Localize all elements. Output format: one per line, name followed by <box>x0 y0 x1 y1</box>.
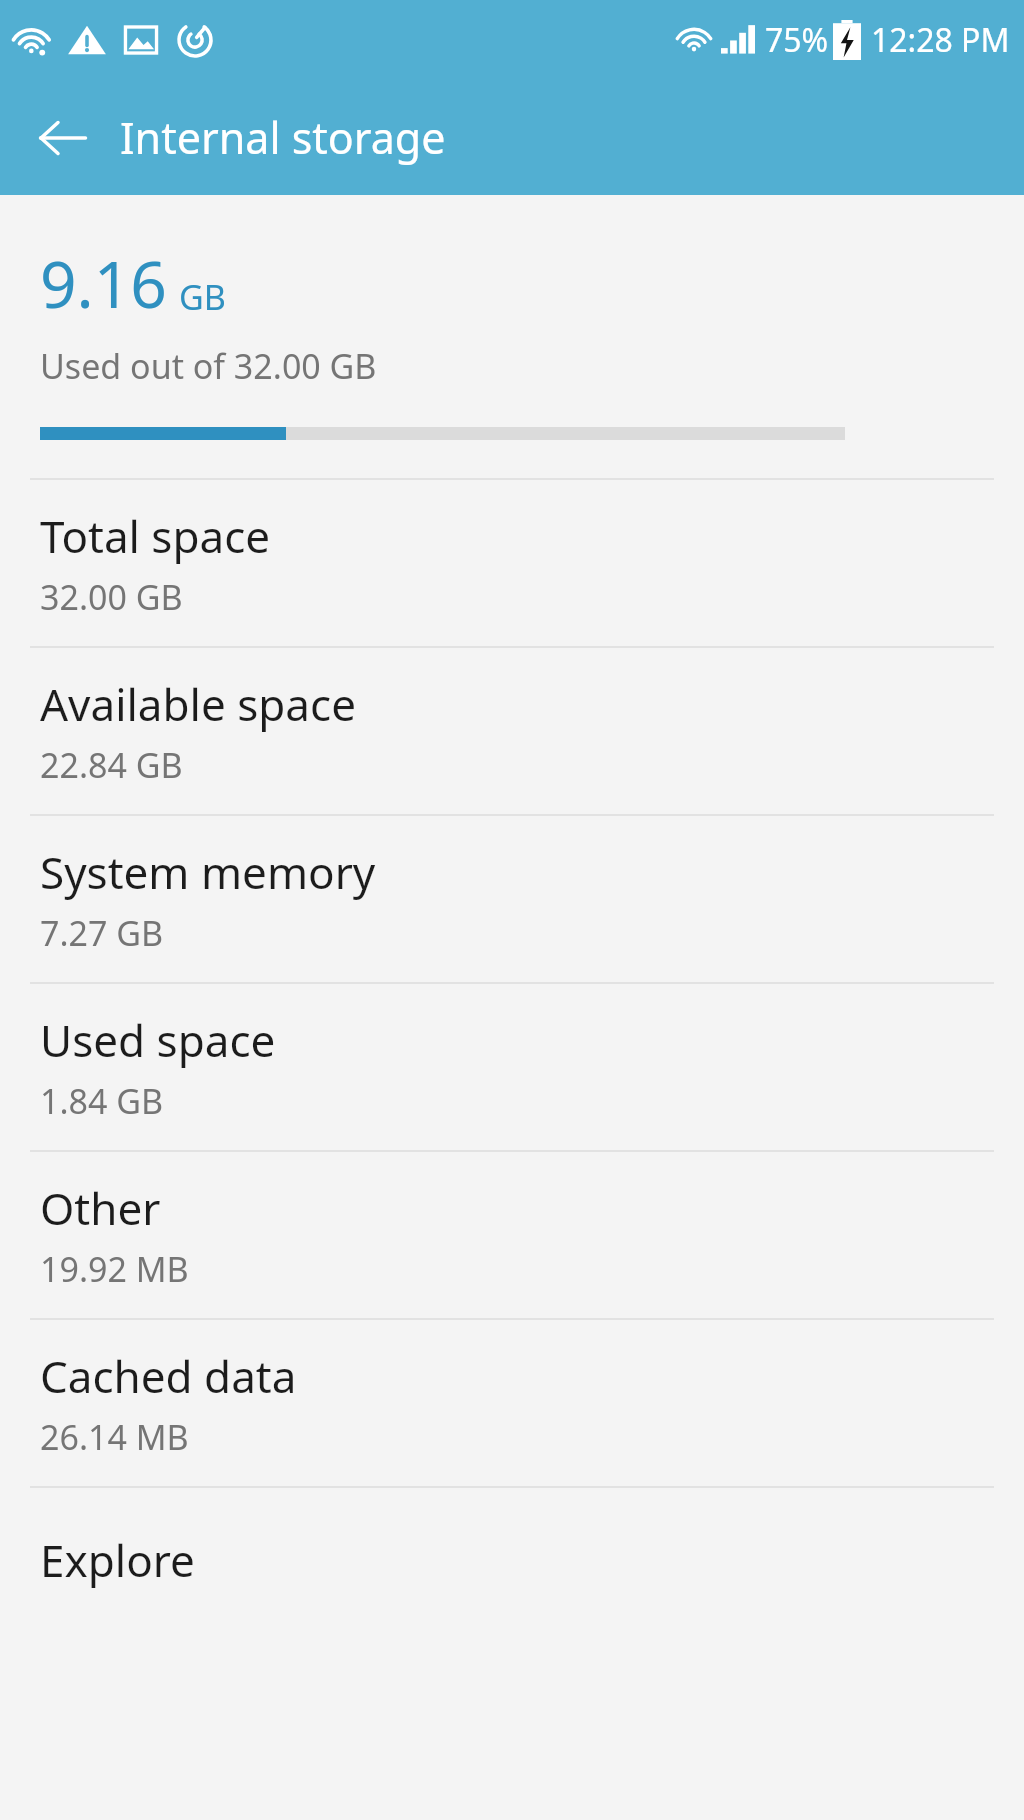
staticText: 9.16 <box>40 240 167 327</box>
staticText: Internal storage <box>120 108 446 167</box>
button[interactable]: System memory <box>0 816 1024 982</box>
button[interactable]: Total space <box>0 480 1024 646</box>
staticText: 1.84 GB <box>40 1078 164 1124</box>
staticText: Used out of 32.00 GB <box>40 343 377 389</box>
staticText: Used space <box>40 1010 276 1070</box>
staticText: 12:28 PM <box>871 18 1010 62</box>
staticText: 19.92 MB <box>40 1246 189 1292</box>
staticText: Available space <box>40 674 356 734</box>
staticText: 32.00 GB <box>40 574 183 620</box>
staticText: Total space <box>40 506 271 566</box>
button[interactable]: Explore <box>0 1488 1024 1654</box>
button[interactable]: Navigate up <box>20 96 104 180</box>
staticText: System memory <box>40 842 376 902</box>
staticText: Other <box>40 1178 161 1238</box>
button[interactable]: Cached data <box>0 1320 1024 1486</box>
button[interactable]: Used space <box>0 984 1024 1150</box>
staticText: GB <box>179 274 226 320</box>
staticText: Cached data <box>40 1346 297 1406</box>
staticText: 75% <box>765 18 829 62</box>
staticText: 22.84 GB <box>40 742 183 788</box>
staticText: Explore <box>40 1530 195 1590</box>
staticText: 26.14 MB <box>40 1414 189 1460</box>
button[interactable]: Available space <box>0 648 1024 814</box>
staticText: 7.27 GB <box>40 910 164 956</box>
button[interactable]: Other <box>0 1152 1024 1318</box>
